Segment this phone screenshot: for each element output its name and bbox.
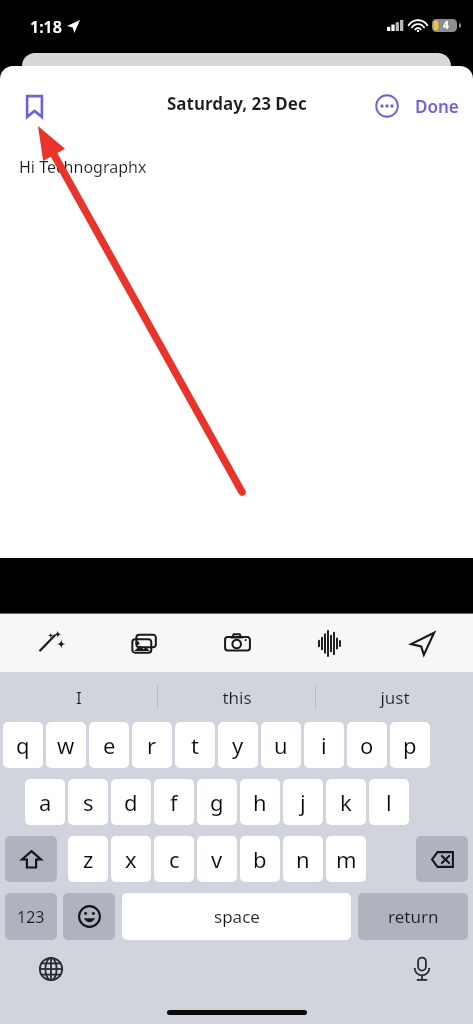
button[interactable]: l <box>369 779 409 825</box>
staticText: space <box>214 905 260 928</box>
button[interactable]: x <box>111 836 151 882</box>
staticText: k <box>340 787 352 817</box>
staticText: p <box>403 730 417 760</box>
staticText: 1:18 <box>30 16 62 38</box>
button[interactable]: o <box>347 722 387 768</box>
staticText: y <box>232 730 244 760</box>
button[interactable]: r <box>132 722 172 768</box>
staticText: q <box>16 730 30 760</box>
staticText: b <box>253 844 267 874</box>
staticText: Saturday, 23 Dec <box>167 92 307 115</box>
staticText: t <box>191 730 199 760</box>
button[interactable]: i <box>304 722 344 768</box>
button[interactable]: Markup <box>28 620 74 666</box>
staticText: l <box>386 787 392 817</box>
staticText: return <box>388 905 439 928</box>
staticText: h <box>253 787 267 817</box>
staticText: o <box>360 730 374 760</box>
button[interactable]: Backspace <box>416 836 468 882</box>
button[interactable]: v <box>197 836 237 882</box>
button[interactable]: Audio <box>306 620 352 666</box>
staticText: v <box>211 844 223 874</box>
button[interactable]: f <box>154 779 194 825</box>
button[interactable]: h <box>240 779 280 825</box>
button[interactable]: a <box>25 779 65 825</box>
button[interactable]: Location <box>399 620 445 666</box>
button[interactable]: Camera <box>214 620 260 666</box>
button[interactable]: Emoji <box>63 893 115 940</box>
button[interactable]: Shift <box>5 836 57 882</box>
button[interactable]: Photo library <box>121 620 167 666</box>
button[interactable]: Dictation <box>401 948 443 990</box>
button[interactable]: More options <box>369 88 405 124</box>
staticText: x <box>125 844 137 874</box>
button[interactable]: e <box>89 722 129 768</box>
button[interactable]: u <box>261 722 301 768</box>
button[interactable]: w <box>46 722 86 768</box>
button[interactable]: k <box>326 779 366 825</box>
button[interactable]: 123 <box>5 893 57 940</box>
staticText: n <box>296 844 310 874</box>
button[interactable]: n <box>283 836 323 882</box>
button[interactable]: just <box>316 672 473 722</box>
staticText: 123 <box>17 906 45 928</box>
button[interactable]: p <box>390 722 430 768</box>
staticText: a <box>39 787 52 817</box>
staticText: d <box>124 787 138 817</box>
staticText: Hi Technographx <box>19 156 147 178</box>
staticText: j <box>300 787 306 817</box>
staticText: f <box>170 787 178 817</box>
button[interactable]: m <box>326 836 366 882</box>
button[interactable]: space <box>122 893 351 940</box>
button[interactable]: y <box>218 722 258 768</box>
button[interactable]: t <box>175 722 215 768</box>
staticText: s <box>83 787 94 817</box>
staticText: g <box>210 787 224 817</box>
button[interactable]: Done <box>405 89 469 124</box>
staticText: i <box>321 730 327 760</box>
button[interactable]: Bookmark <box>14 86 54 126</box>
button[interactable]: s <box>68 779 108 825</box>
staticText: r <box>147 730 157 760</box>
staticText: I <box>76 686 82 709</box>
staticText: z <box>83 844 94 874</box>
button[interactable]: c <box>154 836 194 882</box>
button[interactable]: this <box>158 672 315 722</box>
staticText: Done <box>415 95 459 118</box>
staticText: 4 <box>443 18 449 32</box>
button[interactable]: return <box>358 893 468 940</box>
staticText: just <box>380 686 410 709</box>
button[interactable]: d <box>111 779 151 825</box>
button[interactable]: b <box>240 836 280 882</box>
button[interactable]: Change keyboard <box>30 948 72 990</box>
staticText: u <box>274 730 288 760</box>
button[interactable]: z <box>68 836 108 882</box>
button[interactable]: g <box>197 779 237 825</box>
staticText: m <box>336 844 357 874</box>
staticText: c <box>169 844 180 874</box>
button[interactable]: q <box>3 722 43 768</box>
staticText: w <box>57 730 75 760</box>
button[interactable]: j <box>283 779 323 825</box>
staticText: this <box>222 686 252 709</box>
staticText: e <box>103 730 116 760</box>
button[interactable]: I <box>0 672 157 722</box>
